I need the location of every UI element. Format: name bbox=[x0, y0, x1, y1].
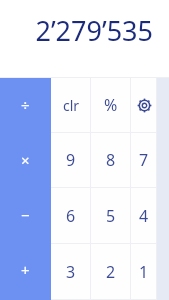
button[interactable]: Settings bbox=[131, 78, 157, 132]
button[interactable]: × bbox=[0, 132, 51, 187]
staticText: ÷ bbox=[21, 95, 30, 115]
button[interactable]: clr bbox=[51, 78, 91, 132]
staticText: 2 bbox=[106, 261, 116, 283]
button[interactable]: 6 bbox=[51, 188, 91, 243]
staticText: 9 bbox=[66, 149, 76, 171]
staticText: × bbox=[21, 150, 30, 170]
button[interactable]: 4 bbox=[131, 188, 157, 243]
button[interactable]: 5 bbox=[91, 188, 131, 243]
staticText: 4 bbox=[139, 205, 149, 227]
button[interactable]: 1 bbox=[131, 244, 157, 299]
button[interactable]: 7 bbox=[131, 133, 157, 187]
staticText: 6 bbox=[66, 205, 76, 227]
button[interactable]: − bbox=[0, 187, 51, 242]
button[interactable]: 9 bbox=[51, 133, 91, 187]
staticText: 3 bbox=[66, 261, 76, 283]
button[interactable]: 2’279’535 bbox=[0, 0, 169, 77]
staticText: clr bbox=[63, 96, 80, 115]
button[interactable]: 8 bbox=[91, 133, 131, 187]
staticText: + bbox=[21, 260, 30, 280]
staticText: − bbox=[21, 205, 30, 225]
button[interactable]: 3 bbox=[51, 244, 91, 299]
staticText: 1 bbox=[139, 261, 149, 283]
staticText: % bbox=[104, 94, 118, 116]
staticText: 5 bbox=[106, 205, 116, 227]
staticText: 8 bbox=[106, 149, 116, 171]
staticText: 2’279’535 bbox=[35, 12, 153, 49]
button[interactable]: 2 bbox=[91, 244, 131, 299]
staticText: 7 bbox=[139, 149, 149, 171]
button[interactable]: + bbox=[0, 242, 51, 298]
button[interactable]: ÷ bbox=[0, 78, 51, 132]
button[interactable]: % bbox=[91, 78, 131, 132]
